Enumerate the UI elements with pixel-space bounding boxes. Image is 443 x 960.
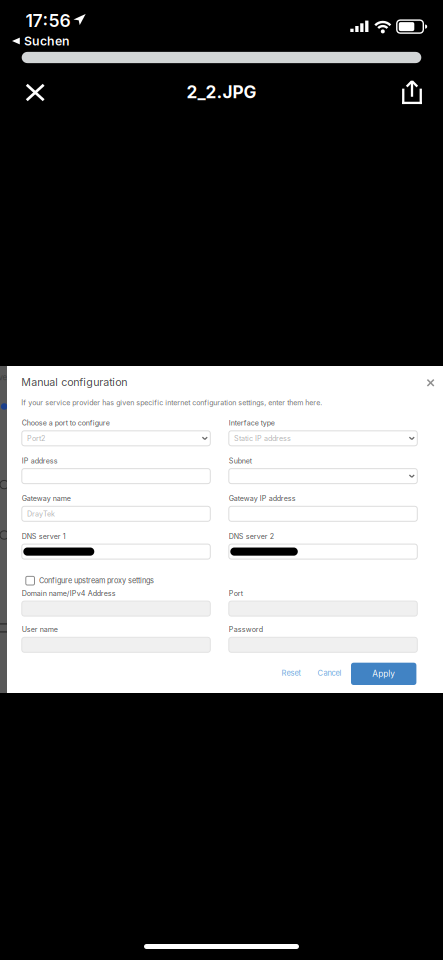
staticText: User name xyxy=(22,625,58,634)
button[interactable]: Cancel xyxy=(313,662,346,684)
staticText: Subnet xyxy=(229,456,252,465)
staticText: Gateway name xyxy=(22,494,71,503)
staticText: DrayTek xyxy=(27,509,55,518)
button[interactable]: Configure upstream proxy settings xyxy=(26,576,276,586)
staticText: 2_2.JPG xyxy=(186,82,256,102)
button[interactable]: Share xyxy=(402,80,422,104)
staticText: Interface type xyxy=(229,419,275,427)
staticText: Domain name/IPv4 Address xyxy=(22,589,116,598)
staticText: Apply xyxy=(372,669,395,679)
staticText: Reset xyxy=(281,668,300,678)
staticText: Suchen xyxy=(24,34,70,48)
button[interactable]: Close dialog xyxy=(421,373,437,391)
button[interactable]: Reset xyxy=(276,662,306,684)
staticText: DNS server 2 xyxy=(229,532,274,541)
button[interactable]: Close xyxy=(25,83,45,101)
staticText: If your service provider has given speci… xyxy=(21,398,322,407)
button[interactable]: Suchen xyxy=(6,32,86,50)
staticText: Gateway IP address xyxy=(229,494,296,503)
staticText: 17:56 xyxy=(26,10,71,31)
staticText: Configure upstream proxy settings xyxy=(39,576,154,585)
staticText: Static IP address xyxy=(234,434,291,443)
staticText: ve xyxy=(0,373,7,382)
staticText: IP address xyxy=(22,456,58,465)
button[interactable]: Apply xyxy=(351,663,416,685)
staticText: Choose a port to configure xyxy=(22,419,110,427)
staticText: Port2 xyxy=(27,434,45,443)
staticText: DNS server 1 xyxy=(22,532,66,541)
staticText: Port xyxy=(229,589,243,598)
staticText: Cancel xyxy=(317,668,341,678)
staticText: Password xyxy=(229,625,263,634)
staticText: Manual configuration xyxy=(21,375,127,388)
